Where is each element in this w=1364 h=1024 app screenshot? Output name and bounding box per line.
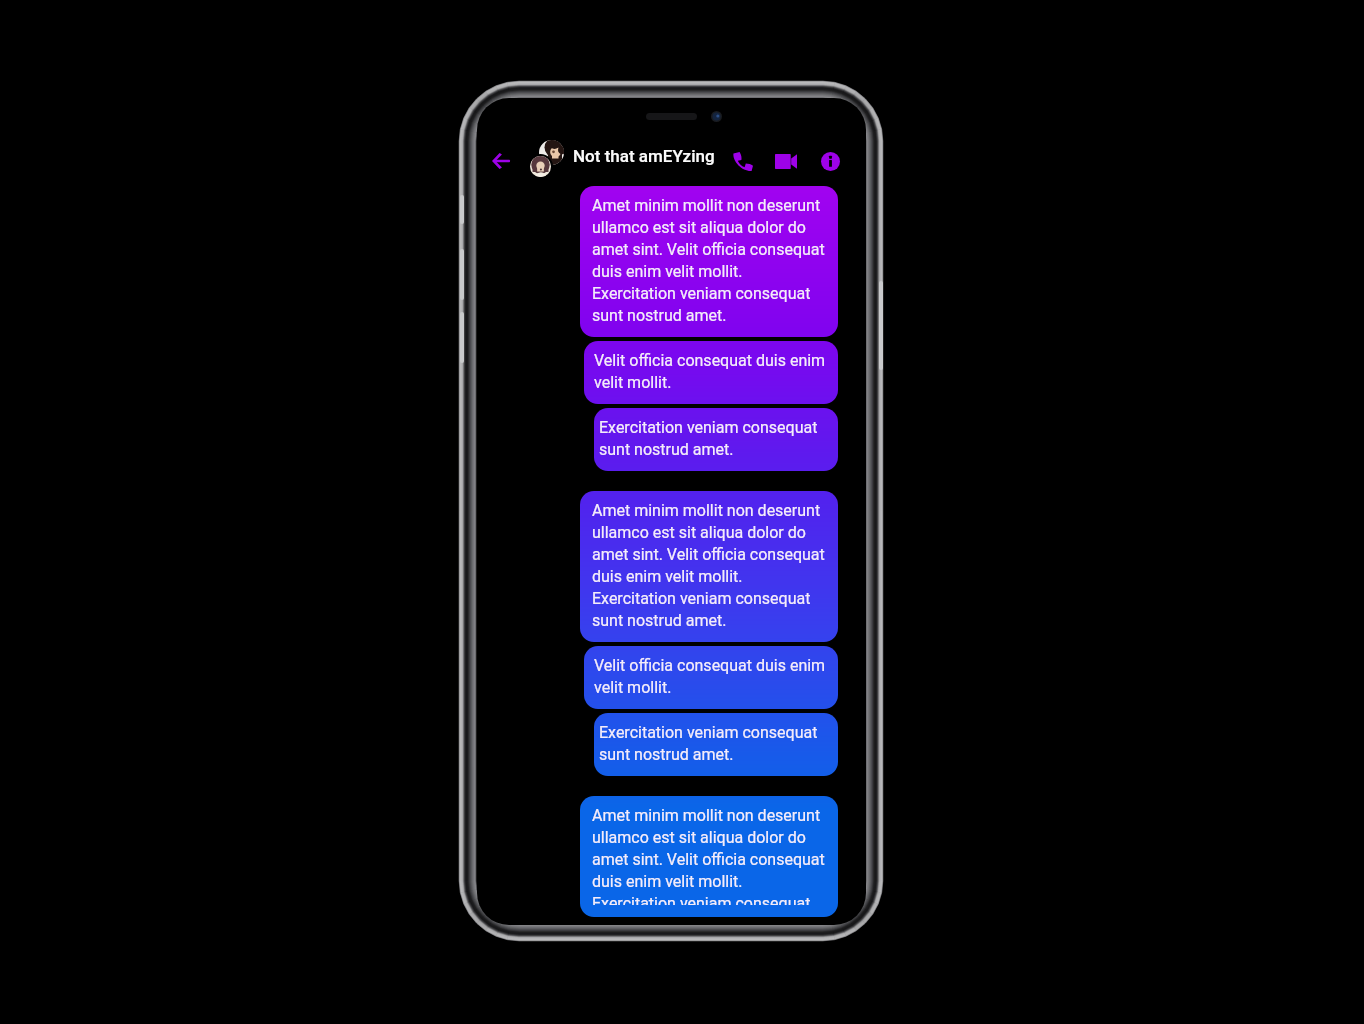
button[interactable]: Details: [815, 146, 845, 176]
staticText: Amet minim mollit non deserunt ullamco e…: [592, 803, 827, 905]
button[interactable]: Amet minim mollit non deserunt ullamco e…: [580, 796, 838, 917]
button[interactable]: Call: [728, 146, 758, 176]
button[interactable]: Velit officia consequat duis enim velit …: [584, 341, 838, 404]
staticText: Exercitation veniam consequat sunt nostr…: [599, 415, 834, 459]
staticText: Not that amEYzing: [573, 146, 715, 166]
button[interactable]: Video call: [771, 146, 801, 176]
staticText: Velit officia consequat duis enim velit …: [594, 348, 829, 392]
staticText: Amet minim mollit non deserunt ullamco e…: [592, 193, 827, 325]
button[interactable]: Velit officia consequat duis enim velit …: [584, 646, 838, 709]
button[interactable]: Amet minim mollit non deserunt ullamco e…: [580, 186, 838, 337]
staticText: Exercitation veniam consequat sunt nostr…: [599, 720, 834, 764]
button[interactable]: Exercitation veniam consequat sunt nostr…: [594, 408, 838, 471]
button[interactable]: Back: [486, 146, 516, 176]
button[interactable]: Exercitation veniam consequat sunt nostr…: [594, 713, 838, 776]
button[interactable]: Amet minim mollit non deserunt ullamco e…: [580, 491, 838, 642]
staticText: Velit officia consequat duis enim velit …: [594, 653, 829, 697]
staticText: Amet minim mollit non deserunt ullamco e…: [592, 498, 827, 630]
